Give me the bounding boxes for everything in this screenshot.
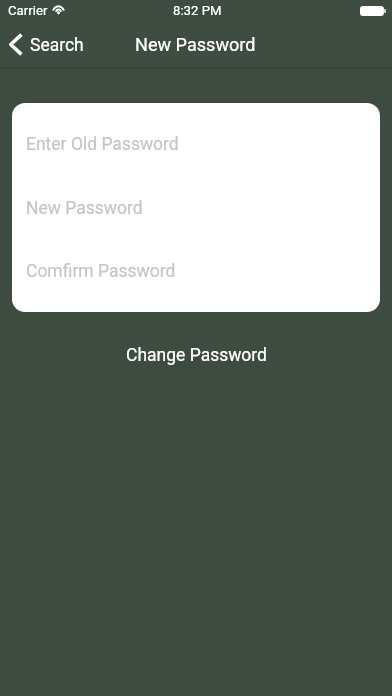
other: Wi-Fi	[52, 5, 65, 15]
button[interactable]: New Password	[12, 187, 380, 229]
staticText: 8:32 PM	[173, 3, 222, 18]
staticText: Search	[30, 35, 84, 56]
button[interactable]: Change Password	[0, 337, 392, 373]
staticText: Carrier	[8, 3, 48, 18]
staticText: New Password	[135, 34, 256, 55]
staticText: Comfirm Password	[26, 261, 176, 282]
staticText: Enter Old Password	[26, 134, 179, 155]
button[interactable]: Comfirm Password	[12, 250, 380, 292]
staticText: Change Password	[126, 345, 267, 366]
staticText: New Password	[26, 198, 143, 219]
button[interactable]: Enter Old Password	[12, 123, 380, 165]
button[interactable]: Back	[2, 26, 94, 62]
other: Back	[9, 33, 23, 56]
